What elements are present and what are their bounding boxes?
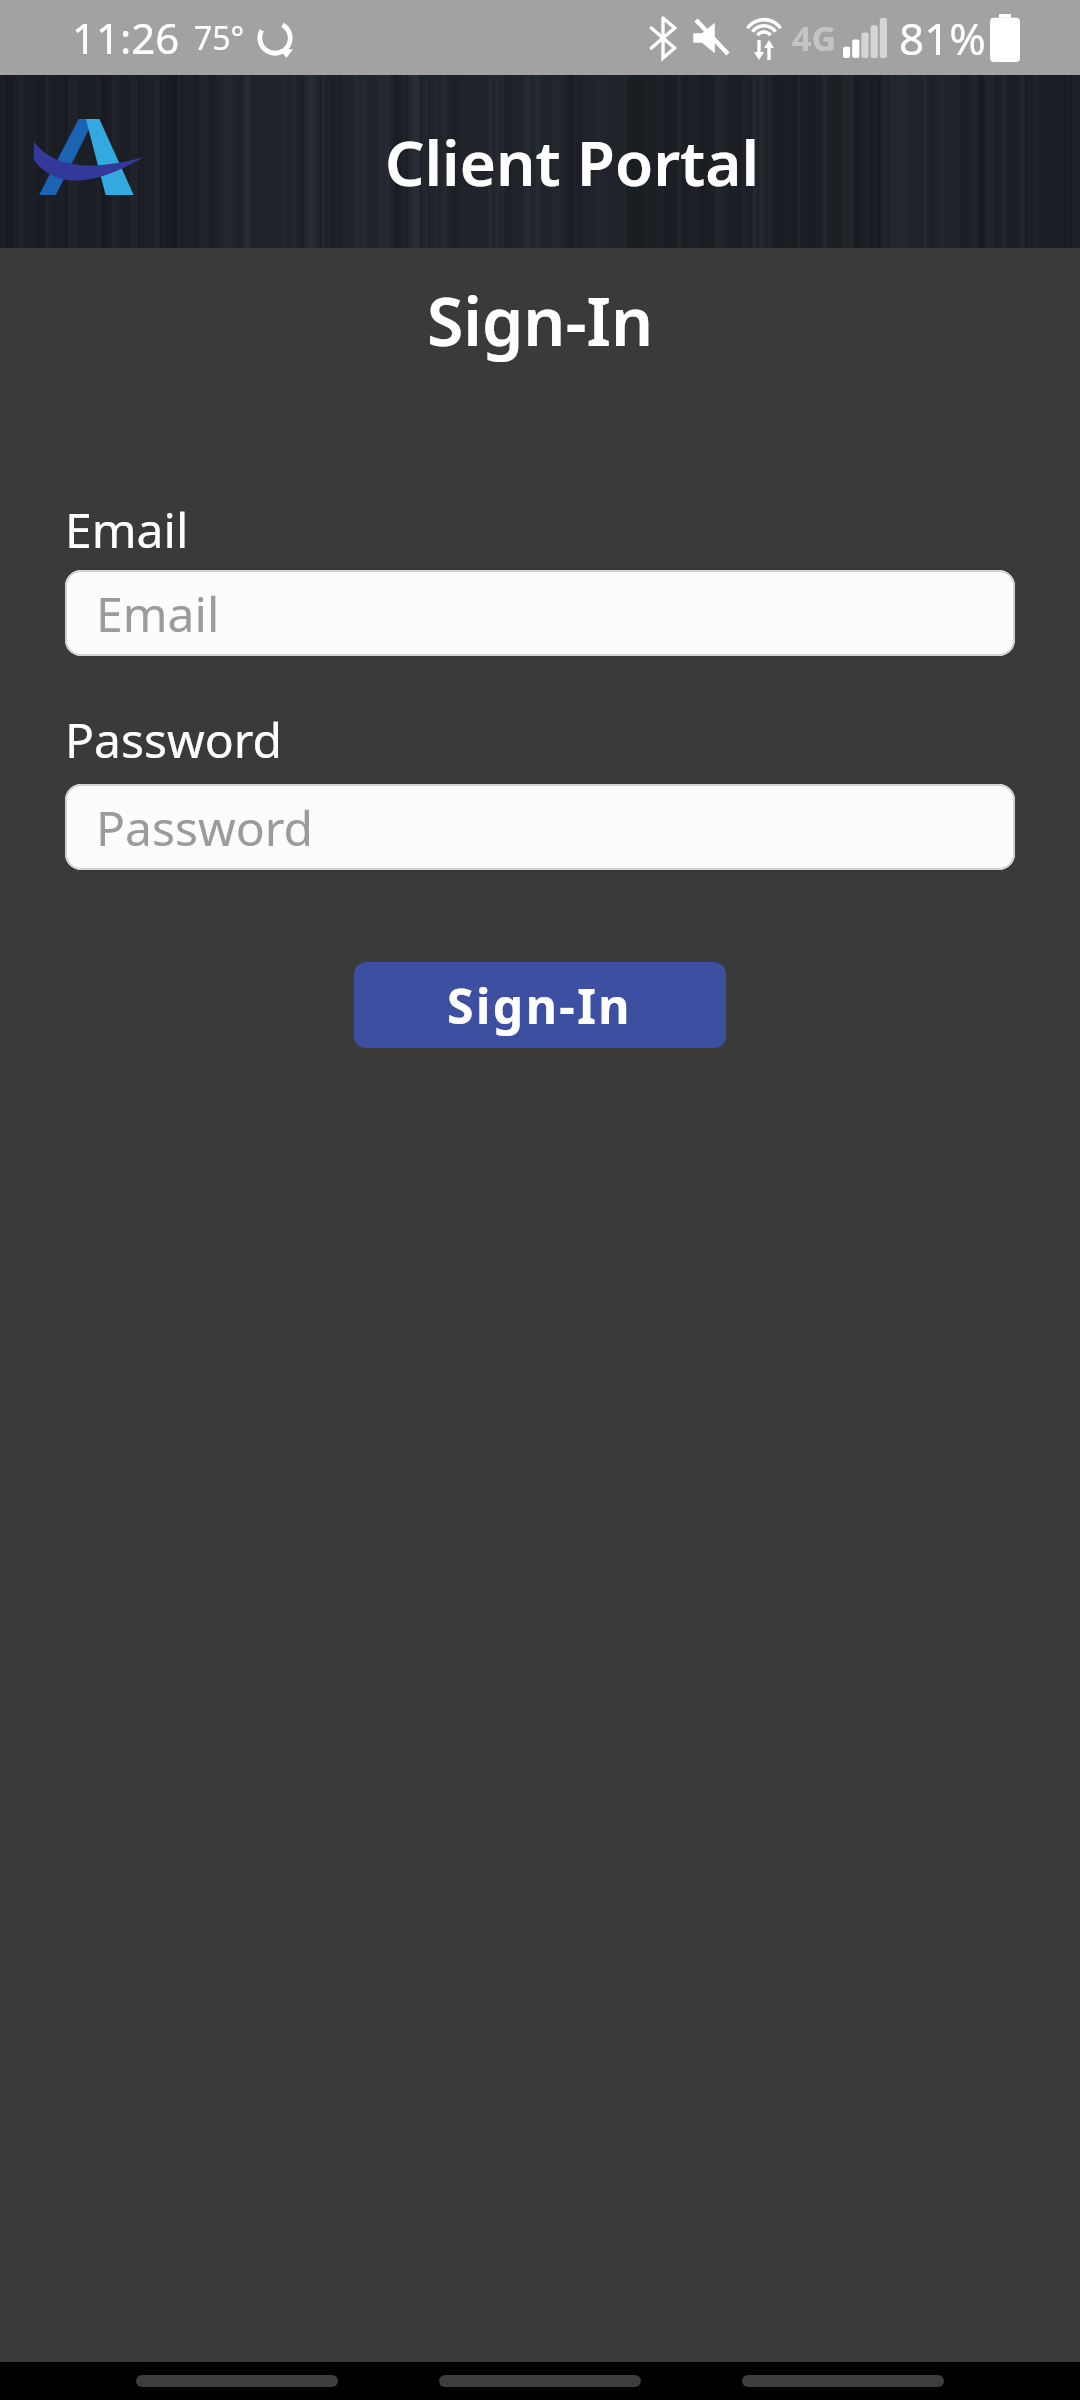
staticText: 81%: [899, 8, 986, 68]
staticText: 11:26: [72, 9, 180, 66]
staticText: Password: [96, 795, 314, 860]
button[interactable]: Sign-In: [354, 962, 726, 1048]
button[interactable]: Password: [65, 784, 1015, 870]
staticText: Email: [65, 497, 189, 562]
button[interactable]: [742, 2375, 944, 2387]
staticText: Client Portal: [385, 120, 760, 204]
staticText: Sign-In: [0, 275, 1080, 365]
staticText: Email: [96, 581, 220, 646]
staticText: Sign-In: [447, 973, 633, 1038]
button[interactable]: [136, 2375, 338, 2387]
staticText: 75°: [194, 16, 245, 60]
staticText: Password: [65, 707, 283, 772]
button[interactable]: Email: [65, 570, 1015, 656]
staticText: 4G: [792, 15, 837, 61]
button[interactable]: [439, 2375, 641, 2387]
